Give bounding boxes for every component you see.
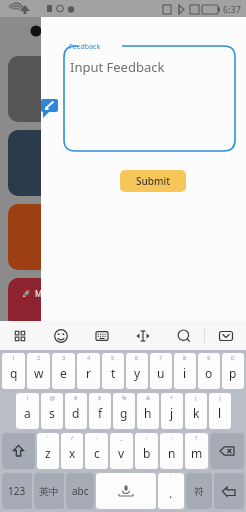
staticText: ( bbox=[195, 394, 197, 401]
staticText: ? bbox=[195, 434, 198, 441]
button[interactable]: 5 bbox=[102, 353, 124, 389]
button[interactable]: 9 bbox=[198, 353, 220, 389]
staticText: q bbox=[10, 365, 18, 381]
button[interactable]: 2 bbox=[27, 353, 50, 389]
staticText: : bbox=[146, 434, 148, 441]
button[interactable]: 6 bbox=[126, 353, 148, 389]
button[interactable] bbox=[8, 56, 128, 122]
staticText: k bbox=[193, 405, 200, 421]
button[interactable]: 4 bbox=[77, 353, 100, 389]
staticText: c bbox=[94, 445, 100, 461]
button[interactable]: Hide keyboard bbox=[205, 321, 246, 350]
button[interactable]: ) bbox=[209, 393, 231, 429]
staticText: ; bbox=[171, 434, 173, 441]
button[interactable]: ' bbox=[37, 433, 59, 469]
staticText: . bbox=[169, 485, 173, 501]
button[interactable]: 8 bbox=[174, 353, 196, 389]
button[interactable]: Space bbox=[96, 473, 156, 509]
staticText: r bbox=[86, 365, 91, 381]
staticText: d bbox=[72, 405, 80, 421]
staticText: 123 bbox=[8, 484, 26, 498]
staticText: & bbox=[146, 394, 151, 401]
staticText: 符 bbox=[194, 485, 204, 498]
button[interactable]: ( bbox=[185, 393, 207, 429]
button[interactable]: Move cursor bbox=[122, 321, 163, 350]
button[interactable]: # bbox=[65, 393, 87, 429]
button[interactable]: - bbox=[85, 433, 108, 469]
button[interactable]: Keyboard bbox=[81, 321, 122, 350]
staticText: m bbox=[191, 445, 203, 461]
staticText: y bbox=[134, 365, 141, 381]
staticText: e bbox=[60, 365, 67, 381]
button[interactable]: ? bbox=[185, 433, 208, 469]
button[interactable]: Submit bbox=[120, 170, 186, 192]
button[interactable]: @ bbox=[41, 393, 63, 429]
button[interactable]: $ bbox=[89, 393, 111, 429]
button[interactable]: Enter bbox=[214, 473, 244, 509]
staticText: - bbox=[96, 434, 98, 441]
staticText: f bbox=[98, 405, 103, 421]
staticText: 9 bbox=[207, 354, 211, 361]
staticText: 5 bbox=[111, 354, 115, 361]
button[interactable]: * bbox=[161, 393, 183, 429]
button[interactable]: abc bbox=[66, 473, 94, 509]
staticText: / bbox=[71, 434, 74, 441]
button[interactable]: 英中 bbox=[34, 473, 64, 509]
staticText: w bbox=[34, 365, 44, 381]
button[interactable]: Backspace bbox=[210, 433, 244, 469]
staticText: v bbox=[118, 445, 125, 461]
staticText: M bbox=[35, 288, 43, 299]
staticText: * bbox=[170, 394, 174, 401]
button[interactable]: 3 bbox=[52, 353, 75, 389]
button[interactable]: / bbox=[61, 433, 83, 469]
staticText: z bbox=[45, 445, 51, 461]
staticText: b bbox=[143, 445, 151, 461]
staticText: _ bbox=[120, 434, 123, 441]
button[interactable]: : bbox=[135, 433, 158, 469]
staticText: Input Feedback bbox=[70, 58, 165, 76]
button[interactable]: 🚀 bbox=[8, 278, 128, 328]
button[interactable]: 1 bbox=[2, 353, 25, 389]
staticText: Submit bbox=[136, 174, 170, 188]
staticText: 6 bbox=[135, 354, 139, 361]
button[interactable]: % bbox=[113, 393, 135, 429]
staticText: u bbox=[157, 365, 165, 381]
staticText: n bbox=[168, 445, 176, 461]
button[interactable] bbox=[8, 204, 128, 270]
staticText: j bbox=[170, 405, 174, 421]
staticText: @ bbox=[50, 394, 55, 401]
button[interactable]: Emoji bbox=[40, 321, 81, 350]
staticText: o bbox=[205, 365, 213, 381]
button[interactable]: Shift bbox=[2, 433, 35, 469]
button[interactable]: Edit feedback bbox=[41, 99, 58, 118]
button[interactable] bbox=[8, 130, 128, 196]
staticText: 0 bbox=[231, 354, 235, 361]
staticText: 🚀 bbox=[22, 290, 31, 298]
button[interactable]: 0 bbox=[222, 353, 244, 389]
button[interactable]: & bbox=[137, 393, 159, 429]
button[interactable]: _ bbox=[110, 433, 133, 469]
button[interactable]: 123 bbox=[2, 473, 32, 509]
staticText: l bbox=[218, 405, 222, 421]
button[interactable]: ! bbox=[16, 393, 39, 429]
staticText: 4 bbox=[87, 354, 91, 361]
staticText: t bbox=[111, 365, 116, 381]
staticText: ) bbox=[219, 394, 221, 401]
staticText: 2 bbox=[37, 354, 41, 361]
button[interactable]: 符 bbox=[186, 473, 212, 509]
button[interactable]: Apps bbox=[0, 321, 40, 350]
staticText: Feedback bbox=[69, 42, 101, 52]
staticText: $ bbox=[98, 394, 102, 401]
staticText: 3 bbox=[62, 354, 66, 361]
staticText: abc bbox=[72, 484, 89, 498]
button[interactable]: 7 bbox=[150, 353, 172, 389]
staticText: % bbox=[122, 394, 127, 401]
staticText: g bbox=[120, 405, 128, 421]
staticText: 7 bbox=[159, 354, 163, 361]
staticText: ' bbox=[170, 474, 172, 481]
button[interactable]: ' bbox=[158, 473, 184, 509]
staticText: 1 bbox=[12, 354, 16, 361]
button[interactable]: Search bbox=[163, 321, 204, 350]
staticText: s bbox=[49, 405, 55, 421]
button[interactable]: ; bbox=[160, 433, 183, 469]
